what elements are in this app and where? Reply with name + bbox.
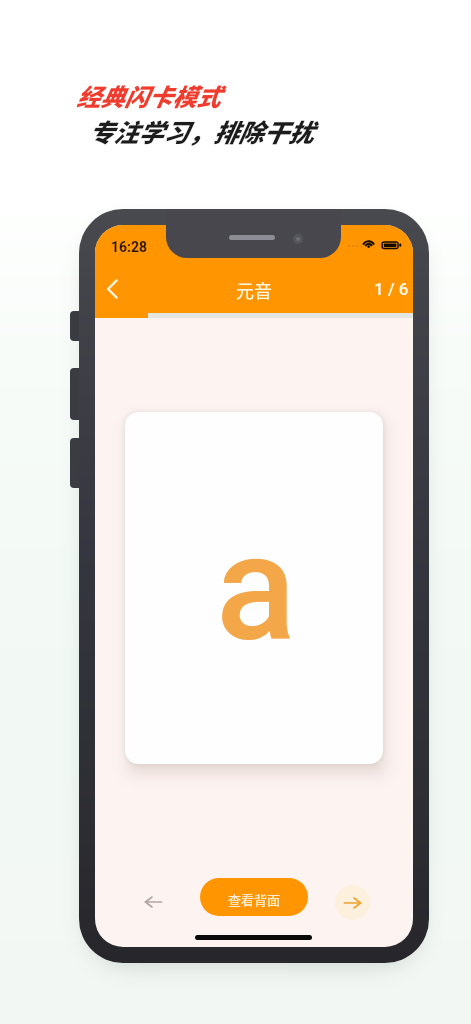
staticText: 16:28	[111, 239, 148, 255]
staticText: a	[216, 502, 296, 675]
staticText: 专注学习，排除干扰	[88, 113, 314, 149]
button[interactable]: Next card	[335, 885, 370, 920]
staticText: 1 / 6	[374, 279, 409, 299]
button[interactable]: a	[125, 412, 383, 764]
button[interactable]: 查看背面	[200, 878, 308, 916]
button[interactable]: Back	[95, 271, 130, 307]
staticText: 查看背面	[228, 890, 281, 909]
button[interactable]: Previous card	[136, 884, 171, 919]
staticText: 元音	[236, 277, 272, 303]
staticText: 经典闪卡模式	[76, 78, 220, 113]
